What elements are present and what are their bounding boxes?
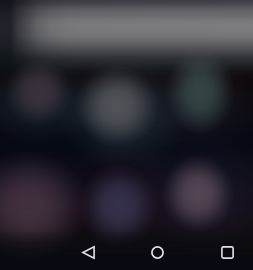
button[interactable]: Home bbox=[135, 234, 179, 270]
button[interactable]: Back bbox=[66, 234, 110, 270]
button[interactable]: Recents bbox=[205, 234, 249, 270]
button[interactable]: Search bbox=[18, 10, 253, 44]
